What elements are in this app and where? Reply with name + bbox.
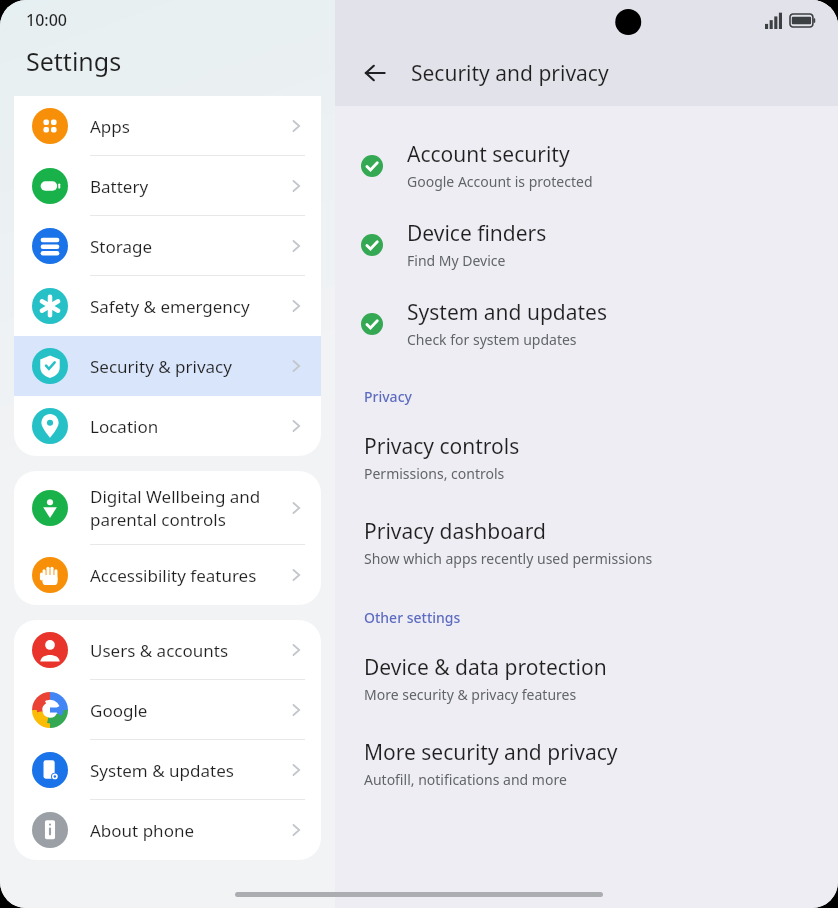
staticText: Show which apps recently used permission…: [364, 549, 653, 568]
staticText: Accessibility features: [90, 564, 287, 587]
staticText: Security and privacy: [411, 59, 609, 88]
staticText: Google Account is protected: [407, 172, 593, 191]
staticText: Account security: [407, 140, 570, 169]
button[interactable]: Safety & emergency: [14, 276, 321, 336]
button[interactable]: System & updates: [14, 740, 321, 800]
staticText: Privacy controls: [364, 432, 520, 461]
staticText: More security and privacy: [364, 738, 618, 767]
button[interactable]: Privacy dashboard: [335, 517, 838, 568]
staticText: More security & privacy features: [364, 685, 577, 704]
button[interactable]: About phone: [14, 800, 321, 860]
button[interactable]: Storage: [14, 216, 321, 276]
staticText: Storage: [90, 235, 287, 258]
staticText: Check for system updates: [407, 330, 577, 349]
button[interactable]: Privacy controls: [335, 432, 838, 483]
button[interactable]: Account security: [335, 140, 838, 191]
staticText: Autofill, notifications and more: [364, 770, 567, 789]
staticText: Safety & emergency: [90, 295, 287, 318]
staticText: Other settings: [364, 608, 461, 627]
button[interactable]: Security & privacy: [14, 336, 321, 396]
staticText: Permissions, controls: [364, 464, 505, 483]
staticText: Settings: [26, 44, 122, 78]
staticText: System & updates: [90, 759, 287, 782]
button[interactable]: More security and privacy: [335, 738, 838, 789]
staticText: Google: [90, 699, 287, 722]
staticText: 10:00: [26, 9, 67, 31]
button[interactable]: System and updates: [335, 298, 838, 349]
staticText: Digital Wellbeing and parental controls: [90, 485, 287, 531]
button[interactable]: Google: [14, 680, 321, 740]
button[interactable]: Device finders: [335, 219, 838, 270]
staticText: Location: [90, 415, 287, 438]
button[interactable]: Accessibility features: [14, 545, 321, 605]
staticText: Privacy dashboard: [364, 517, 546, 546]
staticText: Find My Device: [407, 251, 506, 270]
staticText: Privacy: [364, 387, 412, 406]
button[interactable]: Battery: [14, 156, 321, 216]
staticText: Users & accounts: [90, 639, 287, 662]
staticText: System and updates: [407, 298, 608, 327]
button[interactable]: Device & data protection: [335, 653, 838, 704]
staticText: Device & data protection: [364, 653, 607, 682]
button[interactable]: Location: [14, 396, 321, 456]
button[interactable]: Users & accounts: [14, 620, 321, 680]
button[interactable]: Digital Wellbeing and parental controls: [14, 471, 321, 545]
staticText: Device finders: [407, 219, 547, 248]
staticText: Battery: [90, 175, 287, 198]
button[interactable]: Back: [351, 49, 399, 97]
button[interactable]: Apps: [14, 96, 321, 156]
staticText: Apps: [90, 115, 287, 138]
staticText: Security & privacy: [90, 355, 287, 378]
staticText: About phone: [90, 819, 287, 842]
